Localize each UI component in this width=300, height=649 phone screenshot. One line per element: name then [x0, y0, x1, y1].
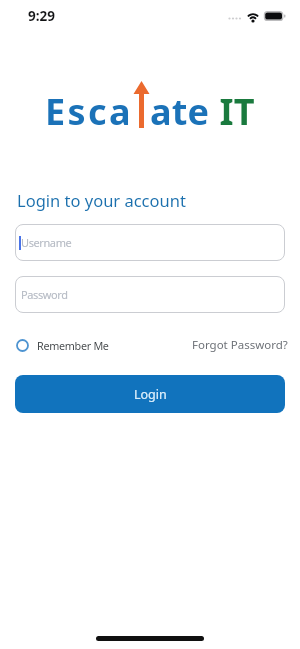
button[interactable]: Password — [15, 276, 285, 313]
staticText: IT — [210, 87, 255, 136]
staticText: Username — [21, 235, 72, 250]
staticText: Login to your account — [17, 189, 186, 211]
staticText: 9:29 — [28, 7, 55, 25]
staticText: Login — [134, 386, 167, 403]
staticText: Remember Me — [37, 338, 109, 353]
button[interactable]: Remember Me — [16, 337, 288, 353]
staticText: ate — [150, 87, 210, 136]
button[interactable]: Login — [15, 375, 285, 413]
button[interactable]: Username — [15, 224, 285, 261]
staticText: Esca — [45, 87, 133, 136]
staticText: Password — [21, 287, 68, 302]
button[interactable]: Forgot Password? — [192, 337, 288, 353]
